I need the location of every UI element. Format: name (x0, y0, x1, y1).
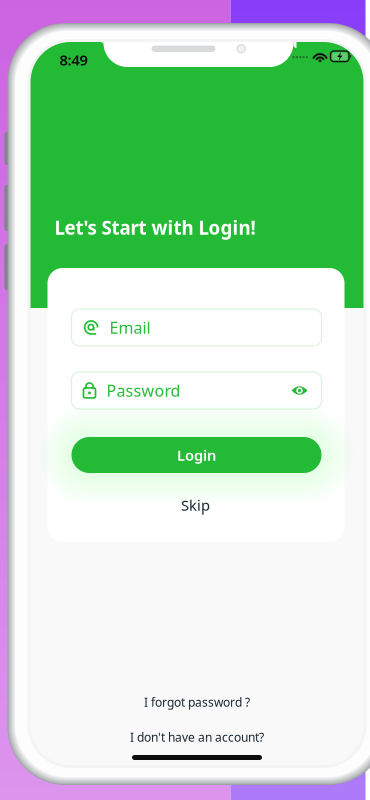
button[interactable]: I forgot password ? (30, 689, 363, 715)
button[interactable]: Login (71, 437, 321, 473)
staticText: Let's Start with Login! (54, 215, 255, 240)
staticText: Password (106, 380, 180, 401)
staticText: Login (177, 445, 216, 465)
staticText: I forgot password ? (144, 694, 250, 710)
button[interactable]: I don't have an account? (30, 724, 363, 750)
staticText: 8:49 (59, 50, 87, 69)
button[interactable]: Skip (160, 494, 230, 516)
staticText: Skip (181, 495, 210, 515)
staticText: I don't have an account? (130, 729, 264, 745)
staticText: Email (109, 317, 150, 338)
